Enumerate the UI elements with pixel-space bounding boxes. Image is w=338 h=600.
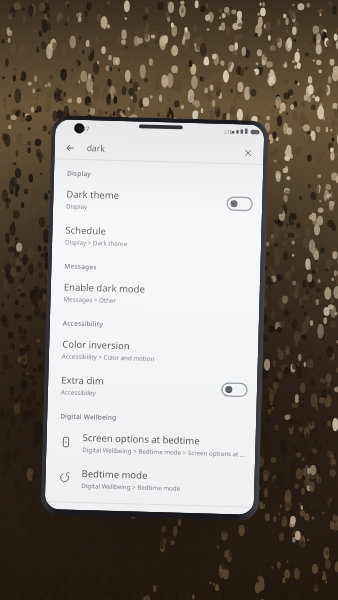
staticText: Bedtime mode xyxy=(81,467,148,482)
staticText: Enable dark mode xyxy=(64,280,146,296)
staticText: Color inversion xyxy=(62,337,130,352)
staticText: LTE xyxy=(224,129,233,136)
staticText: Accessibility xyxy=(63,318,104,328)
button[interactable]: Color inversion xyxy=(49,330,258,372)
button[interactable]: Schedule xyxy=(52,216,262,258)
button[interactable]: Enable dark mode xyxy=(50,273,260,315)
staticText: Accessibility xyxy=(61,387,96,396)
button[interactable]: Bedtime mode xyxy=(45,459,255,501)
staticText: Digital Wellbeing > Bedtime mode > Scree… xyxy=(82,445,245,457)
button[interactable]: Toggle xyxy=(227,197,252,211)
staticText: Display xyxy=(66,201,88,210)
button[interactable]: Toggle xyxy=(222,383,247,397)
staticText: Accessibility > Color and motion xyxy=(62,351,155,362)
staticText: Messages xyxy=(64,261,97,271)
button[interactable]: Dark theme xyxy=(53,180,263,222)
button[interactable]: Back xyxy=(54,136,264,164)
button[interactable]: Extra dim xyxy=(48,366,257,408)
staticText: Screen options at bedtime xyxy=(82,431,201,447)
button[interactable]: Clear search xyxy=(242,147,254,159)
button[interactable]: Back xyxy=(65,142,76,154)
staticText: Schedule xyxy=(65,223,106,238)
staticText: Display > Dark theme xyxy=(65,237,128,247)
staticText: dark xyxy=(87,142,106,154)
staticText: Messages > Other xyxy=(63,294,117,304)
button[interactable]: Screen options at bedtime xyxy=(46,423,256,465)
staticText: Digital Wellbeing > Bedtime mode xyxy=(81,481,180,492)
staticText: Dark theme xyxy=(66,187,119,202)
staticText: Digital Wellbeing xyxy=(60,411,117,422)
staticText: Extra dim xyxy=(61,373,104,388)
staticText: Display xyxy=(67,168,92,178)
staticText: 1:47 xyxy=(77,125,89,133)
button[interactable]: Search Support for "dark" xyxy=(45,502,254,515)
